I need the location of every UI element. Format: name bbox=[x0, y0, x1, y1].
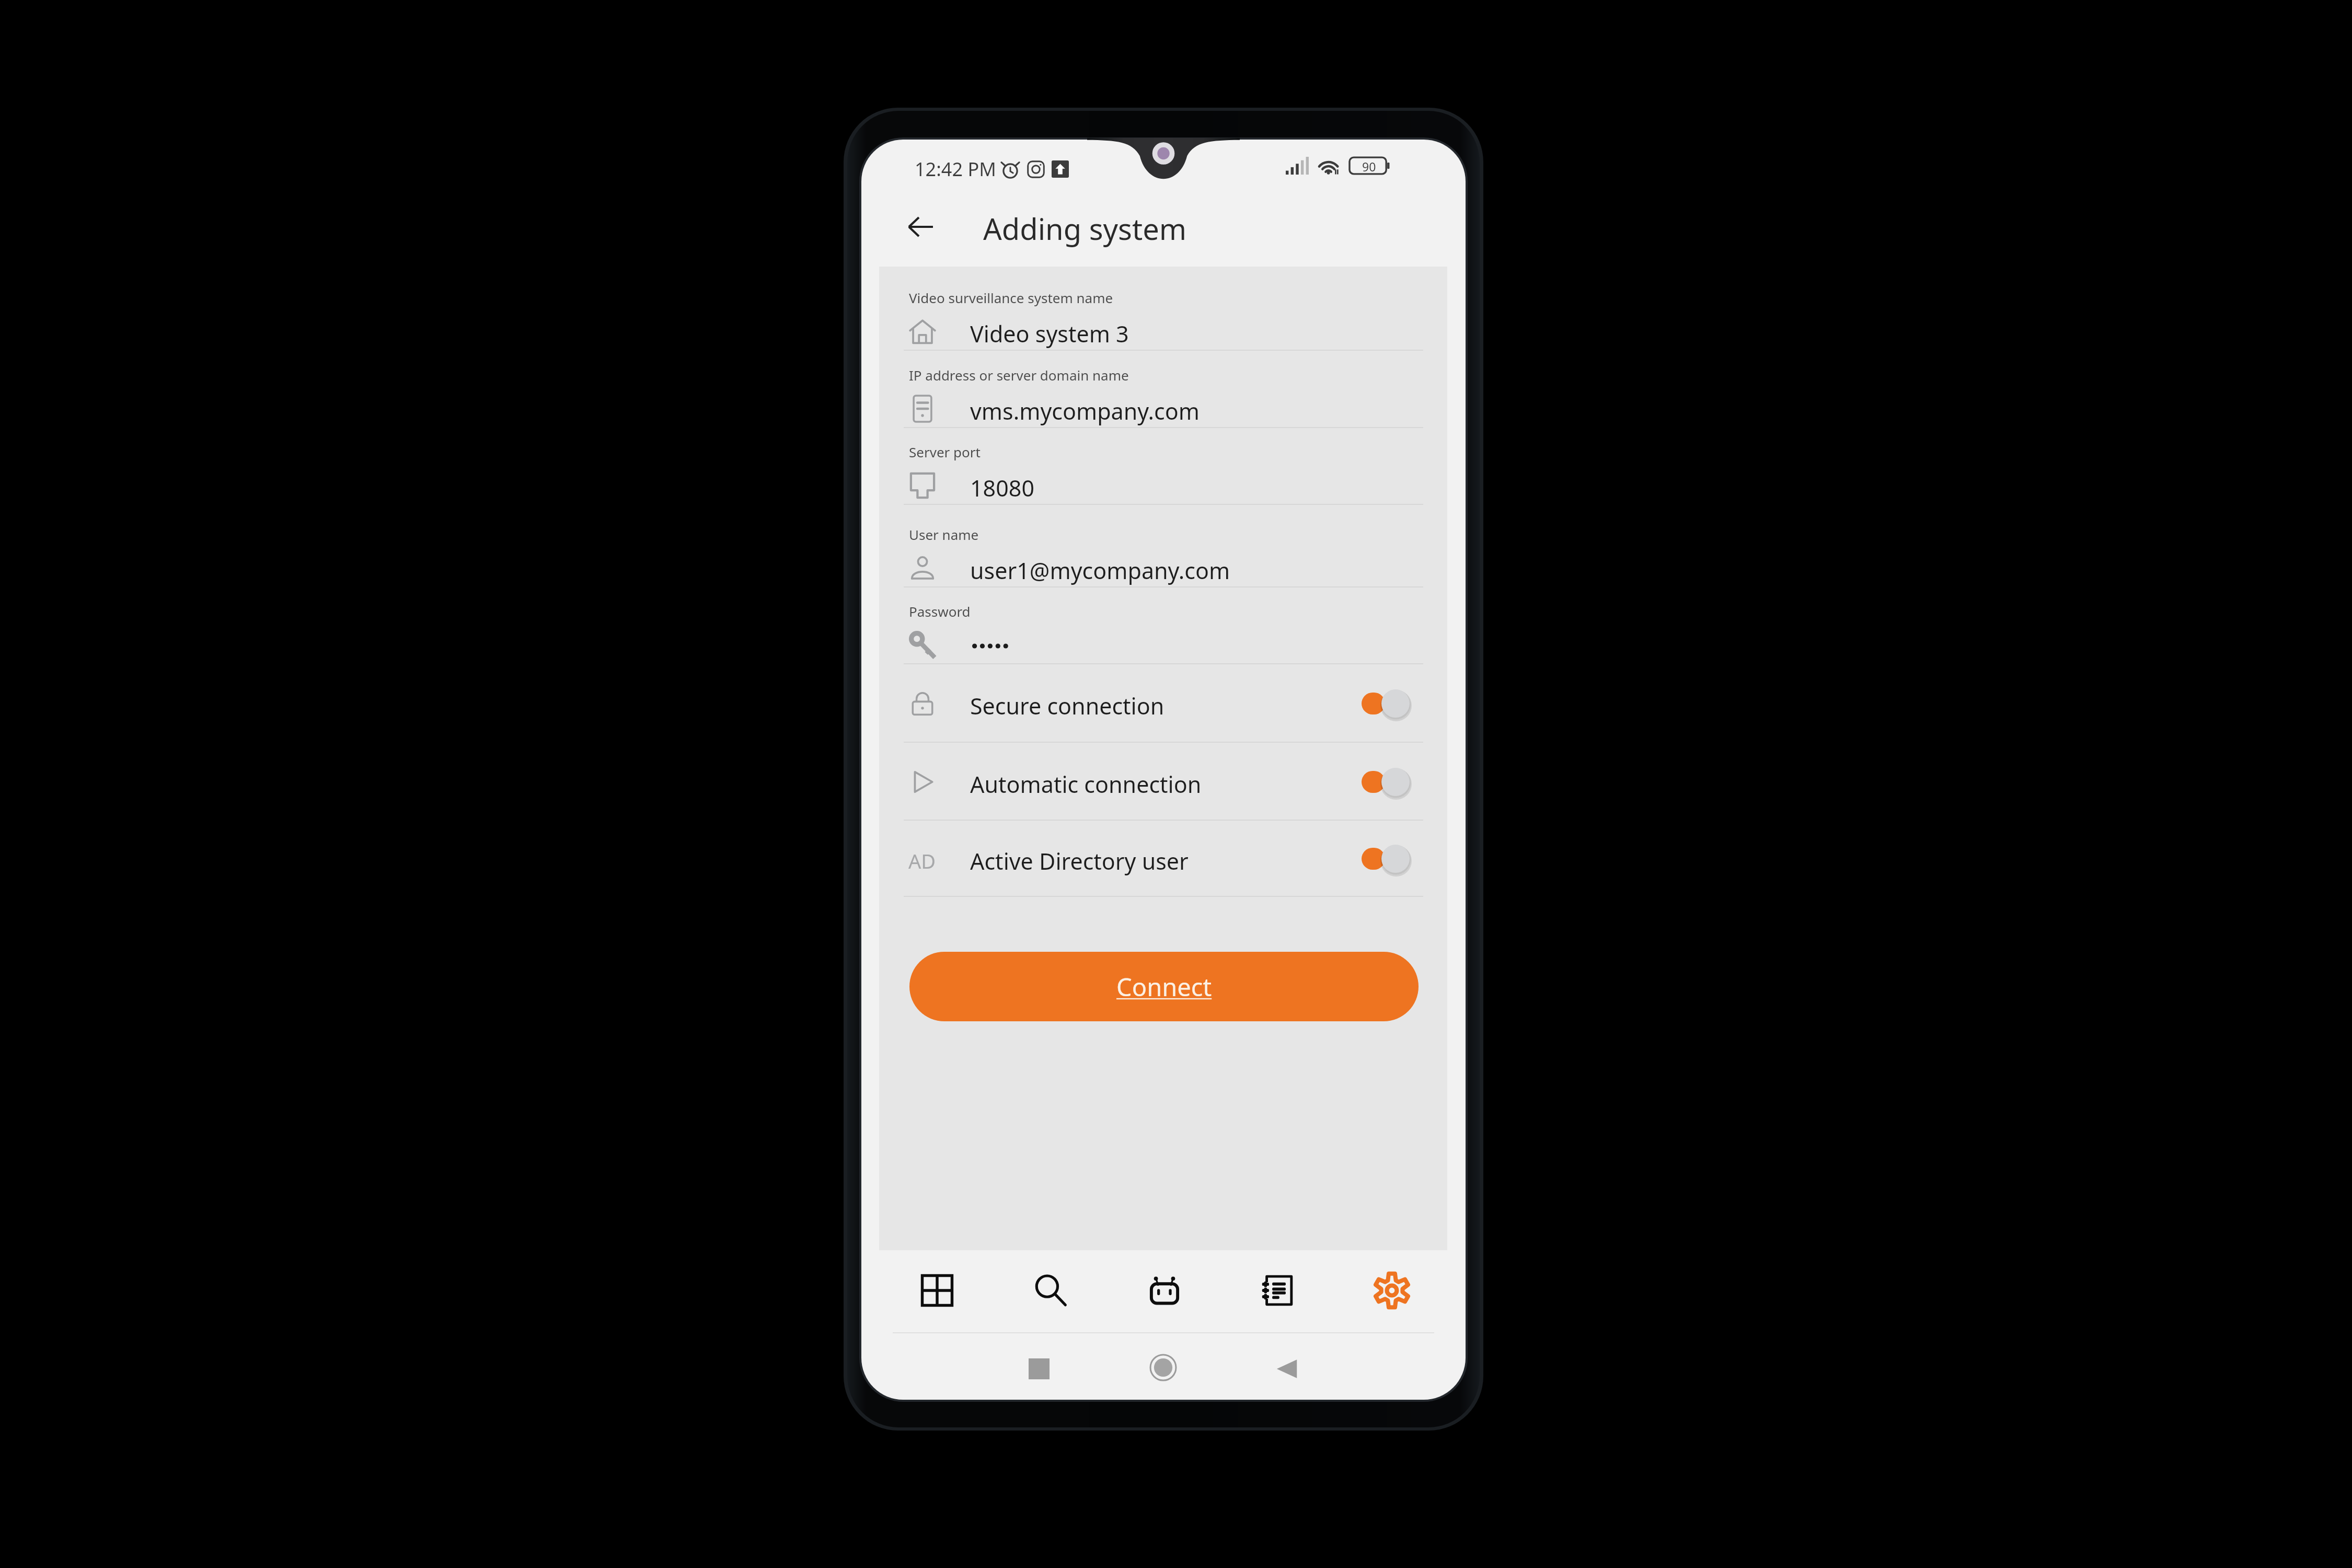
staticText: User name bbox=[909, 525, 979, 544]
button[interactable]: Back bbox=[1275, 1356, 1300, 1381]
button[interactable]: Video surveillance system name bbox=[879, 267, 1447, 351]
button[interactable]: AD bbox=[879, 821, 1447, 897]
button[interactable]: Toggle Active Directory user bbox=[1354, 833, 1422, 885]
staticText: AD bbox=[908, 847, 936, 874]
button[interactable]: Home bbox=[1150, 1354, 1177, 1381]
button[interactable]: Recent apps bbox=[1029, 1358, 1050, 1379]
staticText: IP address or server domain name bbox=[909, 366, 1129, 384]
button[interactable]: Connect bbox=[909, 952, 1419, 1021]
button[interactable]: Settings bbox=[1345, 1250, 1439, 1332]
staticText: vms.mycompany.com bbox=[970, 396, 1200, 426]
button[interactable]: Password bbox=[879, 587, 1447, 664]
button[interactable]: Toggle Automatic connection bbox=[1354, 756, 1422, 808]
staticText: user1@mycompany.com bbox=[970, 555, 1230, 586]
staticText: Connect bbox=[1116, 970, 1212, 1004]
staticText: 18080 bbox=[970, 472, 1034, 503]
staticText: Secure connection bbox=[970, 690, 1165, 721]
button[interactable]: User name bbox=[879, 505, 1447, 587]
button[interactable]: Server port bbox=[879, 428, 1447, 505]
staticText: 90 bbox=[1362, 158, 1376, 175]
button[interactable]: IP address or server domain name bbox=[879, 351, 1447, 428]
staticText: Server port bbox=[909, 443, 981, 461]
button[interactable]: Secure connection bbox=[879, 664, 1447, 743]
staticText: Automatic connection bbox=[970, 769, 1202, 800]
button[interactable]: Events bbox=[1231, 1250, 1325, 1332]
staticText: 12:42 PM bbox=[915, 156, 996, 182]
staticText: Video system 3 bbox=[970, 318, 1129, 349]
button[interactable]: Search bbox=[1004, 1250, 1098, 1332]
staticText: Active Directory user bbox=[970, 846, 1189, 877]
button[interactable]: Back bbox=[893, 200, 948, 254]
button[interactable]: Automatic connection bbox=[879, 743, 1447, 821]
button[interactable]: Grid layouts bbox=[890, 1250, 984, 1332]
button[interactable]: Toggle Secure connection bbox=[1354, 677, 1422, 730]
staticText: Video surveillance system name bbox=[909, 289, 1113, 307]
staticText: Password bbox=[909, 602, 971, 620]
button[interactable]: Devices bbox=[1117, 1250, 1212, 1332]
staticText: Adding system bbox=[983, 209, 1187, 248]
